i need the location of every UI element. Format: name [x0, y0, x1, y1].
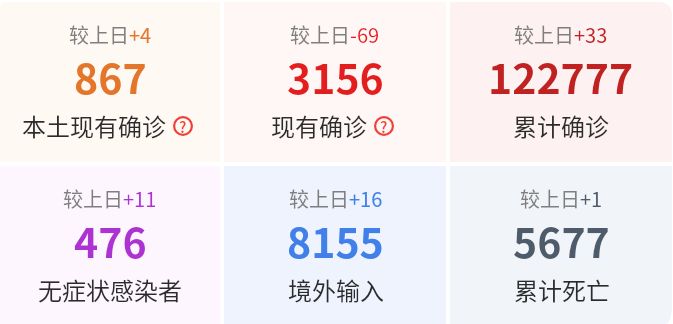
- staticText: 本土现有确诊: [22, 108, 166, 143]
- staticText: 累计死亡: [514, 272, 610, 307]
- staticText: 867: [74, 46, 147, 105]
- staticText: 较上日+1: [520, 184, 603, 213]
- button[interactable]: 较上日+33: [450, 2, 672, 162]
- staticText: 476: [74, 210, 147, 269]
- staticText: ?: [380, 116, 388, 136]
- staticText: ?: [179, 116, 187, 136]
- staticText: 较上日+11: [63, 184, 157, 213]
- staticText: 现有确诊: [271, 108, 367, 143]
- staticText: 3156: [287, 46, 384, 105]
- staticText: 8155: [287, 210, 384, 269]
- staticText: 5677: [513, 210, 610, 269]
- button[interactable]: 较上日-69: [224, 2, 446, 162]
- button[interactable]: 较上日+4: [0, 2, 220, 162]
- button[interactable]: 较上日+16: [224, 166, 446, 324]
- button[interactable]: 较上日+1: [450, 166, 672, 324]
- staticText: 较上日+16: [289, 184, 383, 213]
- button[interactable]: 说明: [173, 116, 193, 136]
- staticText: 境外输入: [288, 272, 384, 307]
- staticText: 较上日+33: [514, 20, 608, 49]
- button[interactable]: 较上日+11: [0, 166, 220, 324]
- button[interactable]: 说明: [374, 116, 394, 136]
- staticText: 较上日-69: [290, 20, 380, 49]
- staticText: 较上日+4: [69, 20, 152, 49]
- staticText: 无症状感染者: [38, 272, 182, 307]
- staticText: 122777: [488, 46, 634, 105]
- staticText: 累计确诊: [513, 108, 609, 143]
